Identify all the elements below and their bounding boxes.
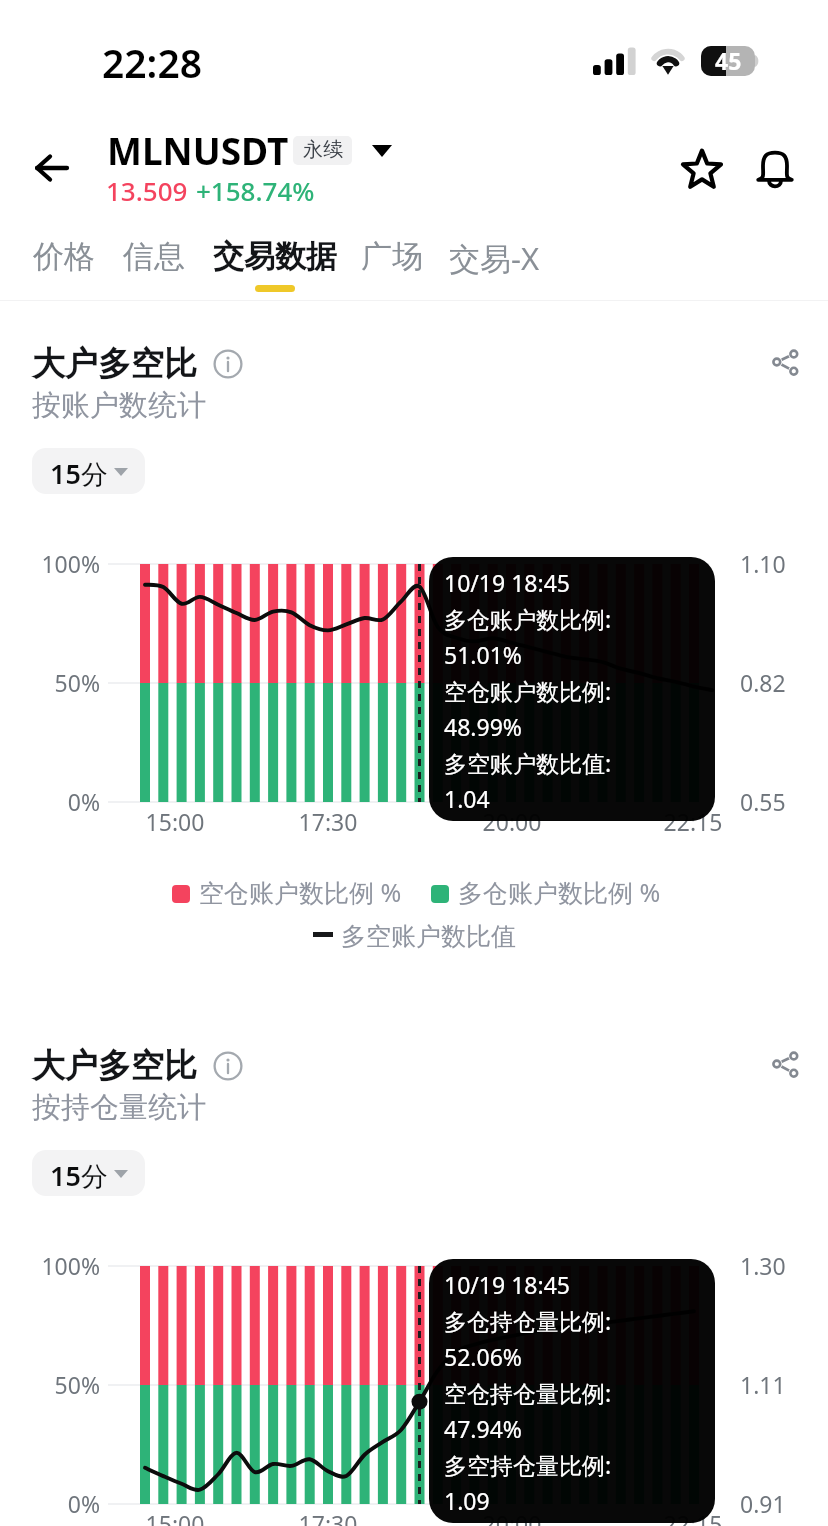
- button[interactable]: 15分: [32, 1150, 145, 1196]
- staticText: 13.509: [106, 173, 188, 208]
- staticText: 47.94%: [444, 1413, 522, 1444]
- staticText: 20:00: [452, 806, 572, 837]
- staticText: 大户多空比: [32, 1045, 197, 1087]
- staticText: 50%: [0, 667, 100, 698]
- staticText: 多空账户数比值: [341, 921, 516, 952]
- button[interactable]: 价格: [19, 222, 109, 296]
- staticText: 交易数据: [213, 237, 337, 276]
- staticText: 15:00: [115, 806, 235, 837]
- staticText: MLNUSDT: [107, 125, 289, 175]
- button[interactable]: 交易数据: [199, 222, 351, 296]
- staticText: 0.55: [740, 786, 828, 817]
- staticText: 多空账户数比值:: [444, 747, 612, 778]
- staticText: 多空持仓量比例:: [444, 1449, 612, 1480]
- staticText: 1.10: [740, 548, 828, 579]
- staticText: 22:15: [633, 1508, 753, 1526]
- staticText: 0%: [0, 1488, 100, 1519]
- button[interactable]: Notifications: [740, 134, 810, 204]
- staticText: 100%: [0, 1250, 100, 1281]
- staticText: 17:30: [268, 1508, 388, 1526]
- staticText: 20:00: [452, 1508, 572, 1526]
- staticText: 0%: [0, 786, 100, 817]
- button[interactable]: Share: [764, 1041, 812, 1089]
- staticText: 按账户数统计: [32, 387, 206, 424]
- staticText: 1.11: [740, 1369, 828, 1400]
- staticText: 空仓账户数比例 %: [199, 875, 402, 909]
- staticText: 空仓持仓量比例:: [444, 1377, 612, 1408]
- staticText: 空仓账户数比例:: [444, 675, 612, 706]
- staticText: 51.01%: [444, 639, 522, 670]
- staticText: 广场: [361, 237, 423, 276]
- staticText: 48.99%: [444, 711, 522, 742]
- staticText: 多仓持仓量比例:: [444, 1305, 612, 1336]
- staticText: 15分: [50, 1157, 108, 1194]
- button[interactable]: Favorite: [667, 134, 737, 204]
- staticText: 22:15: [633, 806, 753, 837]
- staticText: 价格: [33, 237, 95, 276]
- staticText: 10/19 18:45: [444, 1269, 570, 1300]
- button[interactable]: 15分: [32, 448, 145, 494]
- button[interactable]: 广场: [347, 222, 437, 296]
- staticText: 多仓账户数比例 %: [458, 875, 661, 909]
- staticText: 52.06%: [444, 1341, 522, 1372]
- staticText: 信息: [123, 237, 185, 276]
- staticText: 1.04: [444, 783, 490, 814]
- staticText: 0.91: [740, 1488, 828, 1519]
- staticText: 永续: [303, 137, 343, 162]
- staticText: 多仓账户数比例:: [444, 603, 612, 634]
- button[interactable]: Share: [764, 339, 812, 387]
- button[interactable]: Back: [16, 132, 90, 206]
- staticText: 17:30: [268, 806, 388, 837]
- button[interactable]: Switch contract: [362, 131, 402, 171]
- staticText: 22:28: [102, 36, 202, 89]
- staticText: 交易-X: [449, 237, 540, 279]
- staticText: 15:00: [115, 1508, 235, 1526]
- staticText: 100%: [0, 548, 100, 579]
- staticText: 45: [715, 45, 742, 75]
- staticText: +158.74%: [196, 173, 315, 208]
- staticText: 0.82: [740, 667, 828, 698]
- staticText: 1.30: [740, 1250, 828, 1281]
- staticText: 15分: [50, 455, 108, 492]
- button[interactable]: Info: [209, 1047, 247, 1085]
- staticText: 按持仓量统计: [32, 1089, 206, 1126]
- staticText: 1.09: [444, 1485, 490, 1516]
- staticText: 10/19 18:45: [444, 567, 570, 598]
- button[interactable]: 交易-X: [435, 222, 554, 296]
- staticText: 大户多空比: [32, 343, 197, 385]
- staticText: 50%: [0, 1369, 100, 1400]
- button[interactable]: 信息: [109, 222, 199, 296]
- button[interactable]: Info: [209, 345, 247, 383]
